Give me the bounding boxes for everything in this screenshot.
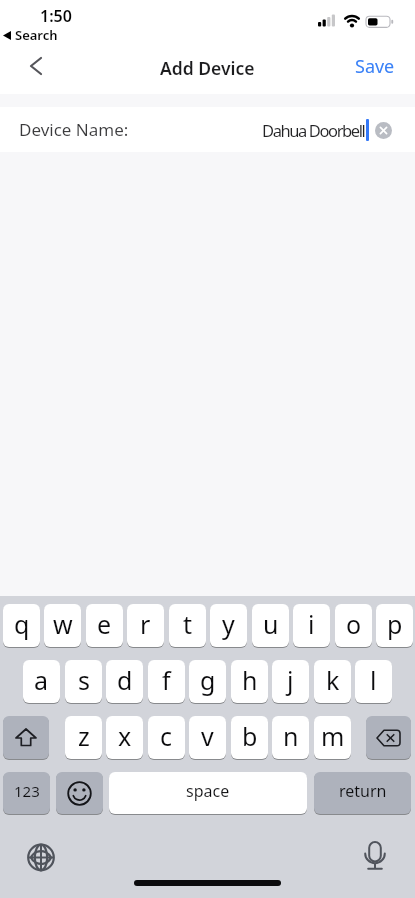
button[interactable]: f <box>148 660 185 703</box>
button[interactable]: s <box>65 660 102 703</box>
button[interactable]: g <box>189 660 226 703</box>
staticText: 123 <box>14 781 40 801</box>
button[interactable]: Search <box>3 26 58 44</box>
button[interactable] <box>3 716 49 759</box>
staticText: j <box>287 663 294 697</box>
button[interactable]: c <box>148 716 185 759</box>
staticText: b <box>242 719 258 753</box>
staticText: s <box>78 663 90 697</box>
staticText: o <box>346 607 362 641</box>
button[interactable]: 123 <box>3 772 50 814</box>
staticText: Dahua Doorbell <box>262 119 365 141</box>
button[interactable]: i <box>293 604 330 647</box>
staticText: v <box>201 719 214 753</box>
button[interactable]: j <box>272 660 309 703</box>
button[interactable]: e <box>86 604 123 647</box>
staticText: Add Device <box>160 56 255 80</box>
button[interactable] <box>27 844 55 872</box>
button[interactable]: l <box>355 660 392 703</box>
button[interactable]: return <box>314 772 411 814</box>
staticText: f <box>162 663 171 697</box>
staticText: return <box>339 780 387 802</box>
button[interactable] <box>56 772 103 814</box>
button[interactable]: a <box>23 660 60 703</box>
button[interactable]: p <box>376 604 413 647</box>
button[interactable] <box>366 716 411 759</box>
staticText: k <box>326 663 340 697</box>
staticText: x <box>118 719 132 753</box>
staticText: n <box>283 719 299 753</box>
staticText: Save <box>355 54 395 79</box>
button[interactable]: n <box>272 716 309 759</box>
button[interactable]: h <box>231 660 268 703</box>
button[interactable] <box>375 122 392 139</box>
staticText: e <box>97 607 112 641</box>
staticText: z <box>78 719 90 753</box>
staticText: p <box>387 607 403 641</box>
button[interactable]: u <box>252 604 289 647</box>
button[interactable]: k <box>314 660 351 703</box>
button[interactable]: space <box>109 772 307 814</box>
staticText: q <box>14 607 30 641</box>
staticText: g <box>200 663 216 697</box>
button[interactable]: Device Name: <box>0 107 415 152</box>
button[interactable]: t <box>169 604 206 647</box>
staticText: d <box>117 663 133 697</box>
button[interactable]: v <box>189 716 226 759</box>
staticText: m <box>321 719 345 753</box>
button[interactable]: m <box>314 716 351 759</box>
staticText: u <box>263 607 279 641</box>
button[interactable] <box>362 841 388 873</box>
button[interactable] <box>22 50 58 84</box>
staticText: 1:50 <box>40 5 72 27</box>
staticText: w <box>53 607 73 641</box>
staticText: c <box>160 719 173 753</box>
button[interactable]: z <box>65 716 102 759</box>
button[interactable]: x <box>106 716 143 759</box>
staticText: Device Name: <box>19 118 129 141</box>
staticText: y <box>222 607 235 641</box>
staticText: h <box>242 663 258 697</box>
button[interactable]: q <box>3 604 40 647</box>
button[interactable]: w <box>44 604 81 647</box>
button[interactable]: y <box>210 604 247 647</box>
button[interactable]: o <box>335 604 372 647</box>
button[interactable]: r <box>127 604 164 647</box>
button[interactable]: Save <box>347 50 402 82</box>
staticText: space <box>186 780 230 802</box>
button[interactable]: b <box>231 716 268 759</box>
button[interactable]: d <box>106 660 143 703</box>
staticText: a <box>34 663 49 697</box>
staticText: r <box>140 607 151 641</box>
staticText: i <box>308 607 315 641</box>
staticText: t <box>183 607 193 641</box>
staticText: Search <box>15 26 58 44</box>
staticText: l <box>370 663 377 697</box>
